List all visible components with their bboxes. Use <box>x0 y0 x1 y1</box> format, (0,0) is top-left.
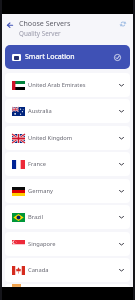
button[interactable]: Smart Location <box>5 45 130 69</box>
staticText: Smart Location <box>25 52 75 62</box>
staticText: France <box>28 160 47 168</box>
staticText: Germany <box>28 187 53 195</box>
button[interactable]: Canada <box>5 258 130 282</box>
button[interactable]: United Kingdom <box>5 126 130 150</box>
button[interactable]: Singapore <box>5 232 130 256</box>
staticText: Singapore <box>28 240 56 248</box>
staticText: Canada <box>28 266 49 274</box>
staticText: Choose Servers <box>19 18 71 28</box>
button[interactable]: Germany <box>5 179 130 203</box>
staticText: Brazil <box>28 213 43 221</box>
button[interactable]: Refresh <box>117 18 129 30</box>
button[interactable]: France <box>5 152 130 176</box>
button[interactable]: Brazil <box>5 205 130 229</box>
staticText: United Arab Emirates <box>28 81 86 89</box>
button[interactable] <box>5 284 130 293</box>
button[interactable]: Back <box>4 19 16 31</box>
staticText: United Kingdom <box>28 134 73 142</box>
button[interactable]: United Arab Emirates <box>5 73 130 97</box>
staticText: Quality Server <box>19 29 61 38</box>
staticText: Australia <box>28 107 52 115</box>
button[interactable]: Australia <box>5 99 130 123</box>
